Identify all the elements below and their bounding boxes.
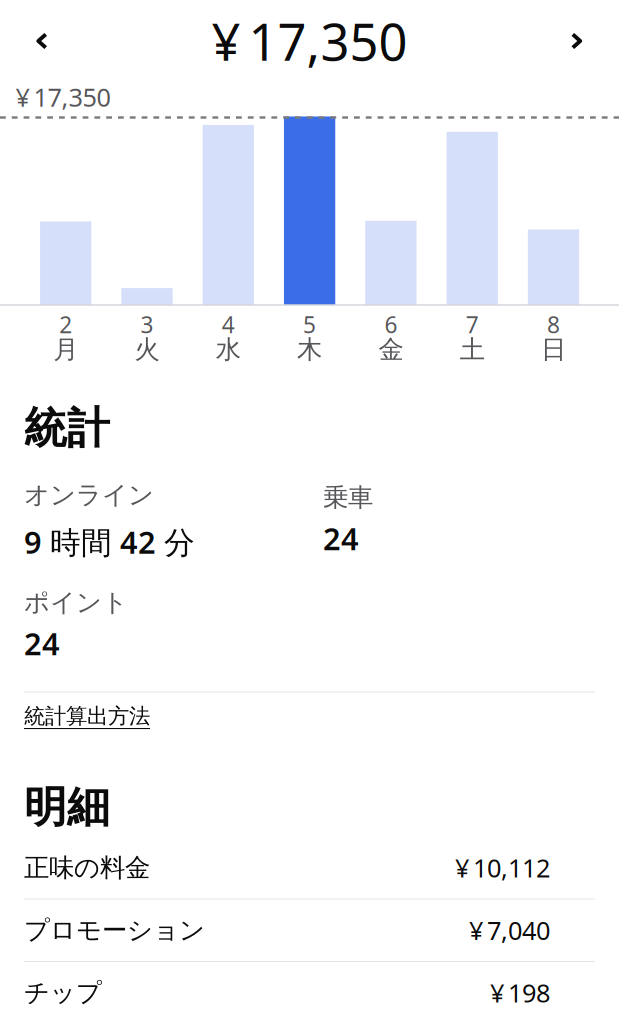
staticText: 乗車 [323,482,373,513]
staticText: 24 [24,623,60,664]
staticText: 正味の料金 [24,852,150,883]
staticText: 明細 [24,781,110,833]
staticText: チップ [24,977,102,1008]
staticText: 7 [466,309,479,339]
staticText: 9 時間 42 分 [24,521,195,562]
staticText: ポイント [24,587,128,618]
button[interactable]: 統計算出方法 [24,703,150,729]
staticText: 5 [303,309,316,339]
staticText: 3 [140,309,153,339]
button[interactable]: Previous day [11,10,73,72]
staticText: ¥ 17,350 [211,7,407,75]
button[interactable]: 正味の料金 [0,837,619,898]
staticText: ¥ 7,040 [469,913,550,947]
staticText: 日 [541,334,566,365]
staticText: 6 [384,309,397,339]
staticText: 2 [59,309,72,339]
staticText: プロモーション [24,915,205,946]
staticText: 統計算出方法 [24,703,150,729]
staticText: 4 [222,309,235,339]
staticText: 24 [323,518,359,559]
staticText: 木 [297,334,322,365]
staticText: 8 [547,309,560,339]
staticText: オンライン [24,479,154,511]
staticText: ¥ 17,350 [15,80,110,114]
staticText: ¥ 10,112 [455,851,550,884]
staticText: ¥ 198 [490,976,550,1009]
staticText: 月 [53,334,78,365]
staticText: 火 [134,334,159,365]
button[interactable]: Next day [545,10,607,72]
button[interactable]: チップ [0,962,619,1023]
button[interactable]: プロモーション [0,899,619,961]
staticText: 金 [378,334,403,365]
staticText: 水 [216,334,241,365]
staticText: 土 [460,334,485,365]
staticText: 統計 [24,402,110,454]
